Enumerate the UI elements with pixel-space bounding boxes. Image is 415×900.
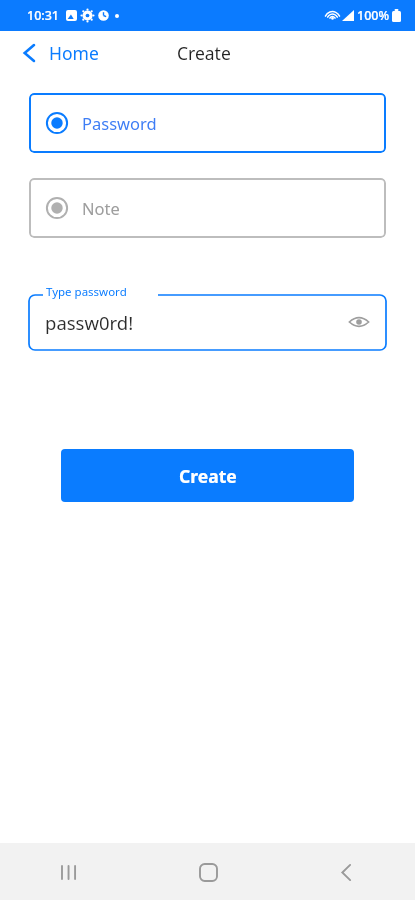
- button[interactable]: Show password: [342, 309, 376, 335]
- staticText: Home: [49, 41, 99, 65]
- button[interactable]: Note: [29, 178, 386, 238]
- other: Back: [22, 42, 37, 64]
- staticText: Note: [82, 197, 120, 219]
- staticText: Create: [179, 464, 237, 488]
- button[interactable]: Home: [181, 845, 235, 899]
- button[interactable]: Password: [29, 93, 386, 153]
- button[interactable]: Recent apps: [42, 845, 96, 899]
- staticText: 10:31: [27, 7, 60, 24]
- staticText: passw0rd!: [45, 310, 134, 335]
- button[interactable]: Back: [319, 845, 373, 899]
- staticText: Type password: [46, 284, 127, 300]
- staticText: Create: [177, 41, 231, 65]
- staticText: 100%: [357, 7, 390, 24]
- button[interactable]: Create: [61, 449, 354, 502]
- button[interactable]: Back: [0, 35, 109, 71]
- staticText: Password: [82, 112, 157, 134]
